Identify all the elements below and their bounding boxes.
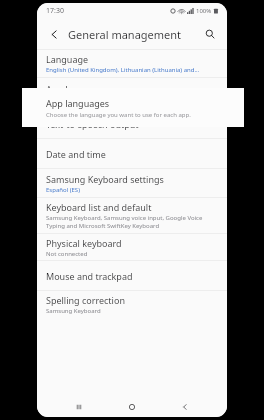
staticText: Physical keyboard: [46, 237, 122, 249]
button[interactable]: Mouse and trackpad: [37, 261, 227, 290]
staticText: App languages: [46, 97, 110, 109]
button[interactable]: Home: [121, 397, 143, 417]
button[interactable]: App languages: [22, 88, 244, 127]
button[interactable]: Back: [45, 25, 63, 43]
button[interactable]: Samsung Keyboard settings: [37, 169, 227, 197]
staticText: Keyboard list and default: [46, 201, 152, 213]
staticText: Mouse and trackpad: [46, 270, 133, 282]
staticText: General management: [68, 27, 182, 42]
staticText: Text-to-speech output: [46, 118, 139, 130]
staticText: 17:30: [46, 6, 64, 16]
button[interactable]: Date and time: [37, 139, 227, 168]
staticText: Samsung Keyboard: [46, 307, 101, 315]
button[interactable]: Spelling correction: [37, 291, 227, 318]
staticText: Not connected: [46, 250, 88, 258]
button[interactable]: App languages: [37, 78, 227, 109]
staticText: Spelling correction: [46, 294, 125, 306]
button[interactable]: Physical keyboard: [37, 234, 227, 260]
button[interactable]: Language: [37, 50, 227, 77]
button[interactable]: Keyboard list and default: [37, 198, 227, 233]
staticText: Language: [46, 53, 89, 65]
staticText: Samsung Keyboard, Samsung voice input, G…: [46, 214, 218, 230]
staticText: App languages: [46, 83, 110, 95]
staticText: Samsung Keyboard settings: [46, 173, 164, 185]
staticText: Date and time: [46, 148, 106, 160]
staticText: Choose the language you want to use for …: [46, 111, 191, 119]
button[interactable]: Recents: [68, 397, 90, 417]
staticText: 100%: [196, 7, 212, 15]
button[interactable]: Back: [174, 397, 196, 417]
staticText: Choose the language you want to use for …: [46, 96, 191, 104]
staticText: English (United Kingdom), Lithuanian (Li…: [46, 66, 200, 74]
button[interactable]: Search: [201, 25, 219, 43]
staticText: Español (ES): [46, 186, 80, 194]
button[interactable]: Text-to-speech output: [37, 110, 227, 138]
